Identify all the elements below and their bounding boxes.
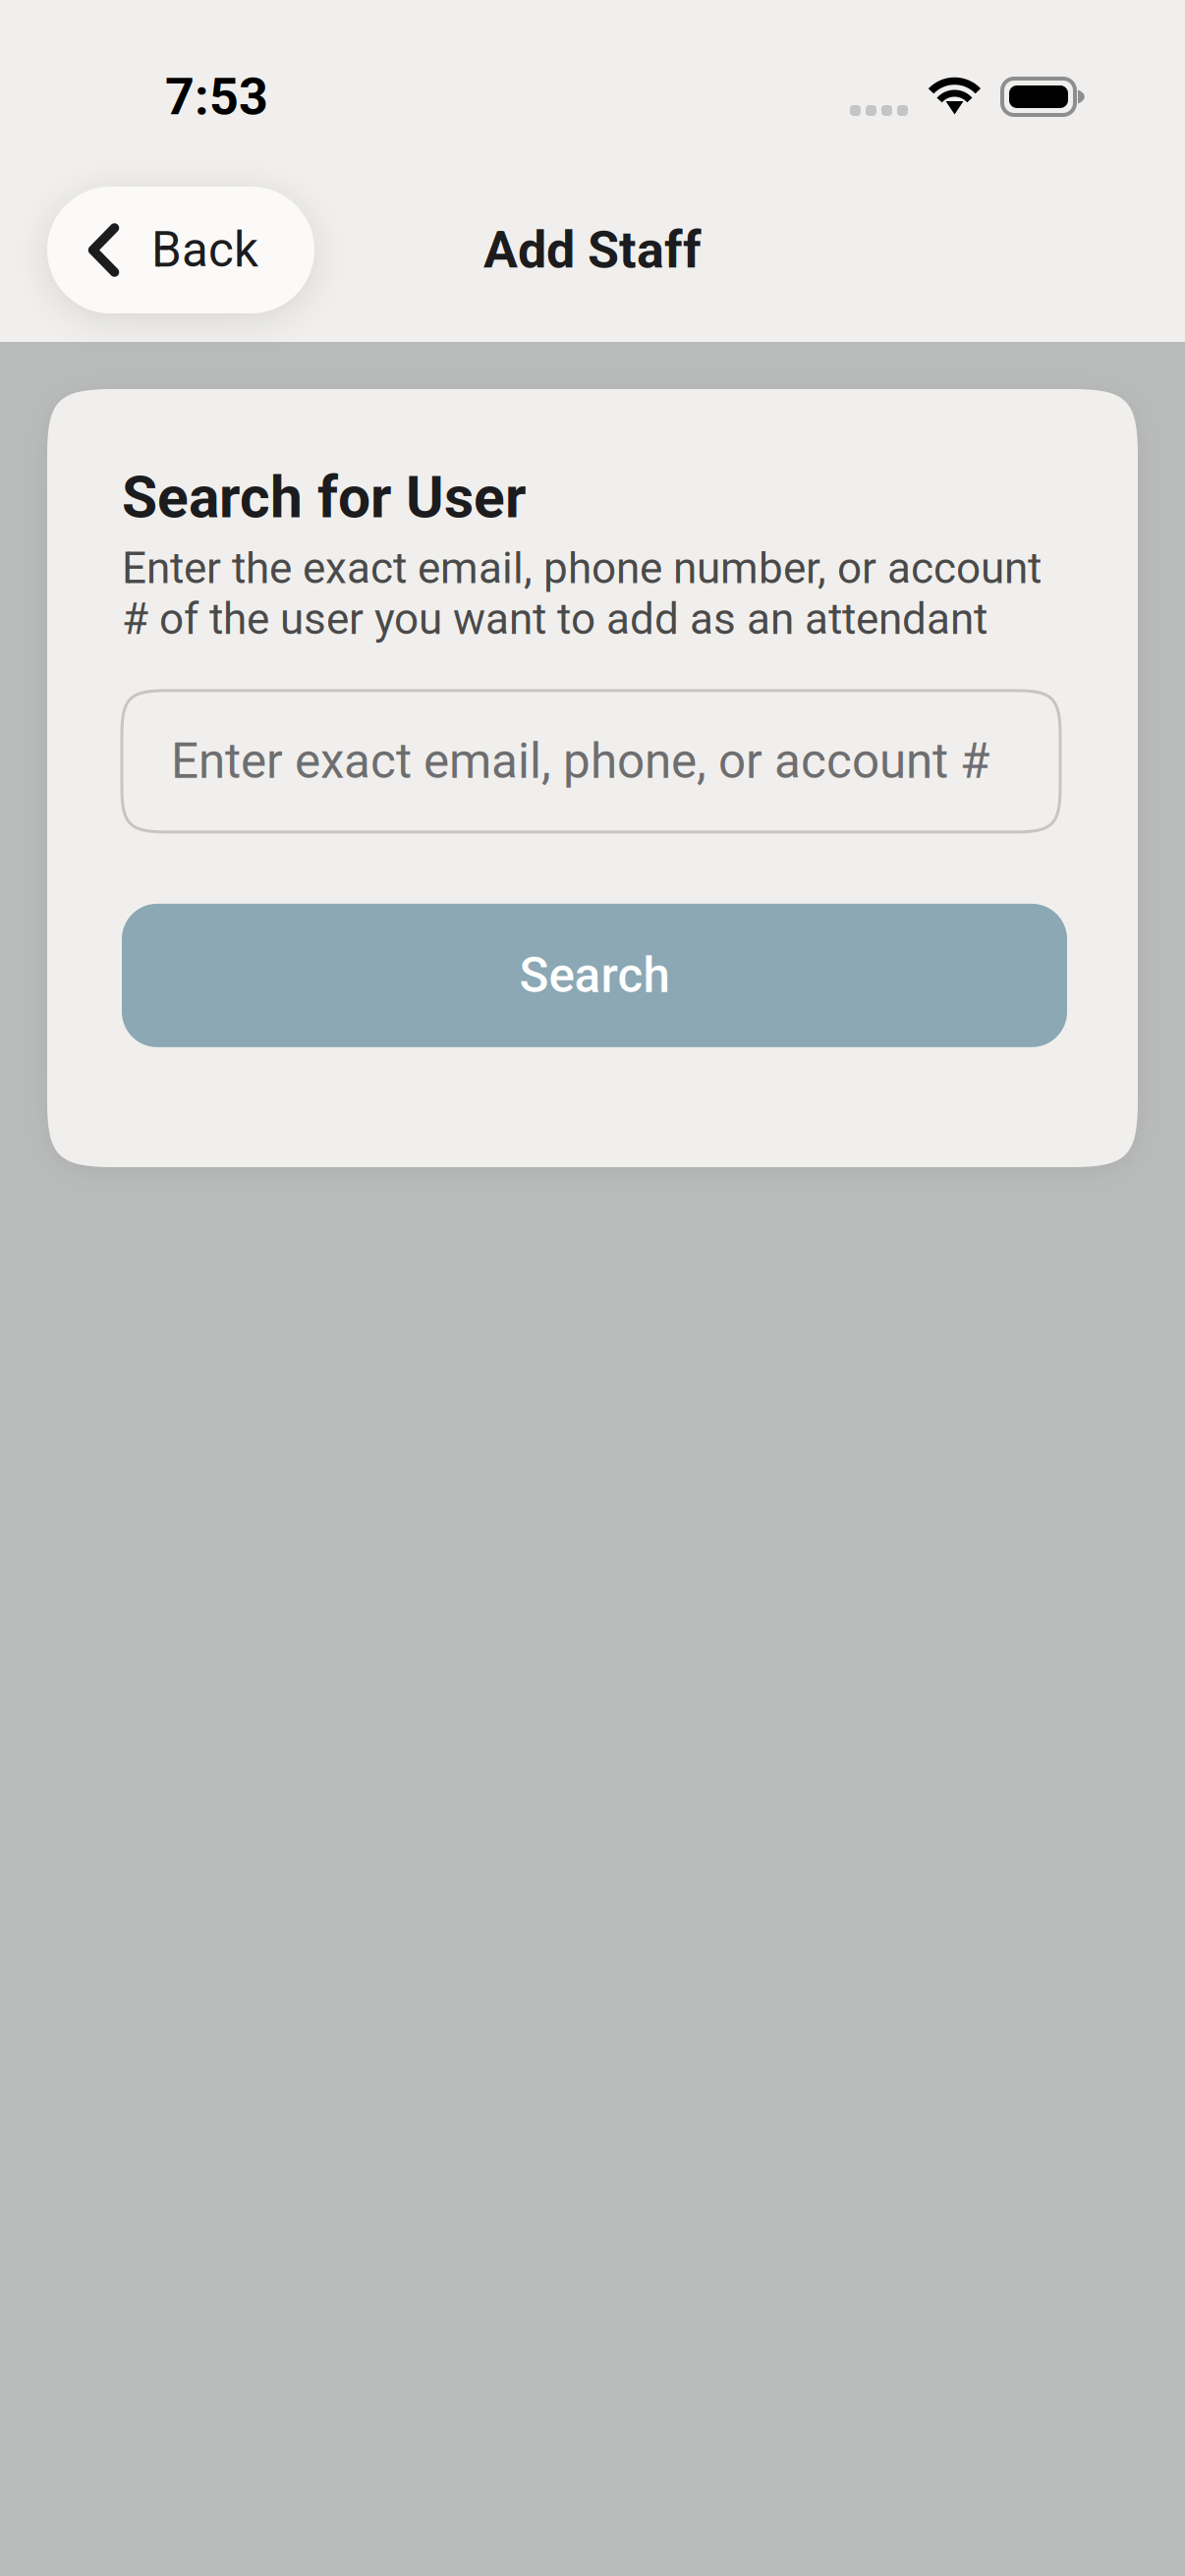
staticText: Search: [519, 947, 670, 1004]
button[interactable]: Back: [47, 187, 314, 313]
staticText: 7:53: [165, 67, 268, 127]
staticText: Search for User: [122, 464, 526, 531]
staticText: Enter the exact email, phone number, or …: [122, 543, 1042, 644]
button[interactable]: Search: [122, 904, 1067, 1047]
staticText: Add Staff: [483, 220, 702, 280]
staticText: Enter exact email, phone, or account #: [171, 733, 989, 790]
staticText: Back: [151, 222, 258, 278]
